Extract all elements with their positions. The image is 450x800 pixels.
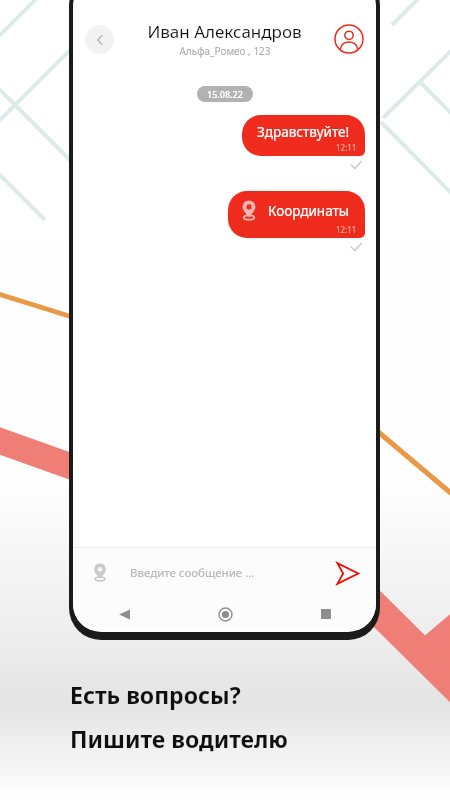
button[interactable]: Back (111, 601, 137, 627)
button[interactable]: Profile (333, 23, 365, 55)
button[interactable]: Back (85, 25, 114, 54)
staticText: Здравствуйте! (257, 123, 350, 141)
button[interactable]: Введите сообщение ... (130, 565, 330, 581)
button[interactable]: Home (212, 601, 238, 627)
staticText: 15.08.22 (207, 88, 243, 100)
staticText: 12:11 (336, 224, 357, 235)
button[interactable]: Координаты (228, 191, 365, 238)
button[interactable]: Recent apps (313, 601, 339, 627)
button[interactable]: Здравствуйте! (242, 115, 365, 156)
staticText: Введите сообщение ... (130, 565, 255, 581)
staticText: Иван Александров (147, 20, 302, 43)
staticText: Есть вопросы? (70, 679, 241, 710)
staticText: Альфа_Ромео , 123 (179, 44, 271, 58)
staticText: Пишите водителю (70, 723, 288, 754)
staticText: Координаты (268, 202, 350, 220)
button[interactable]: Send (330, 556, 364, 590)
staticText: 12:11 (336, 142, 357, 153)
button[interactable]: Send location (85, 558, 115, 588)
